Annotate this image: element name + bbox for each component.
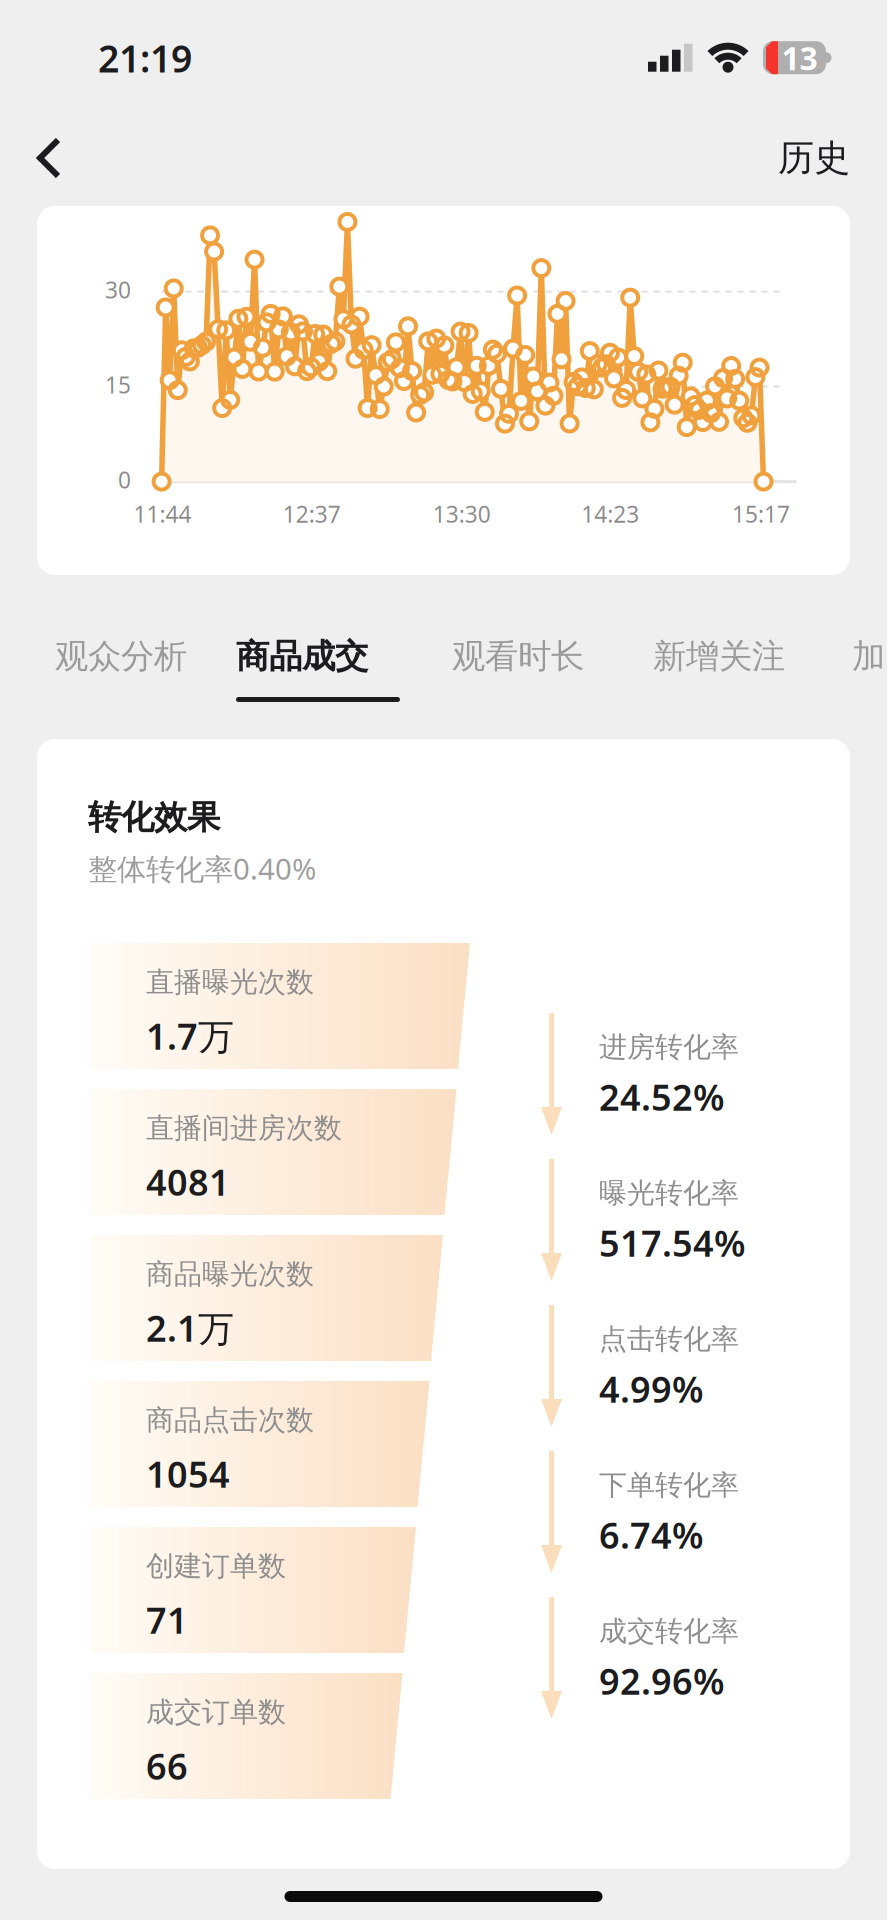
staticText: 观看时长 <box>452 636 584 677</box>
staticText: 13 <box>781 36 817 79</box>
staticText: 进房转化率 <box>599 1030 739 1064</box>
staticText: 商品曝光次数 <box>146 1257 314 1291</box>
staticText: 转化效果 <box>88 797 220 838</box>
staticText: 15:17 <box>732 499 790 529</box>
staticText: 下单转化率 <box>599 1468 739 1502</box>
staticText: 整体转化率0.40% <box>88 849 316 888</box>
staticText: 4081 <box>146 1158 230 1206</box>
staticText: 0 <box>118 465 131 495</box>
staticText: 30 <box>105 275 131 305</box>
button[interactable]: 观众分析 <box>30 575 210 739</box>
button[interactable]: 新增关注 <box>628 575 808 739</box>
staticText: 加 <box>852 636 885 677</box>
staticText: 历史 <box>778 136 850 180</box>
button[interactable]: 观看时长 <box>427 575 607 739</box>
staticText: 1.7万 <box>146 1012 234 1060</box>
staticText: 15 <box>105 370 131 400</box>
staticText: 11:44 <box>134 499 192 529</box>
staticText: 6.74% <box>599 1511 704 1559</box>
staticText: 517.54% <box>599 1219 746 1267</box>
staticText: 92.96% <box>599 1657 725 1705</box>
staticText: 创建订单数 <box>146 1549 286 1583</box>
staticText: 点击转化率 <box>599 1322 739 1356</box>
staticText: 2.1万 <box>146 1304 234 1352</box>
button[interactable]: Back <box>0 112 95 204</box>
staticText: 商品点击次数 <box>146 1403 314 1437</box>
staticText: 71 <box>146 1596 188 1644</box>
staticText: 24.52% <box>599 1073 725 1121</box>
staticText: 4.99% <box>599 1365 704 1413</box>
staticText: 13:30 <box>433 499 491 529</box>
staticText: 1054 <box>146 1450 230 1498</box>
staticText: 曝光转化率 <box>599 1176 739 1210</box>
staticText: 成交订单数 <box>146 1695 286 1729</box>
button[interactable]: 商品成交 <box>211 575 425 739</box>
staticText: 12:37 <box>283 499 341 529</box>
staticText: 新增关注 <box>653 636 785 677</box>
staticText: 直播间进房次数 <box>146 1111 342 1145</box>
staticText: 成交转化率 <box>599 1614 739 1648</box>
button[interactable]: 加 <box>827 575 887 739</box>
staticText: 直播曝光次数 <box>146 965 314 999</box>
button[interactable]: 历史 <box>778 110 887 206</box>
staticText: 66 <box>146 1742 188 1790</box>
staticText: 14:23 <box>581 499 639 529</box>
staticText: 21:19 <box>98 33 192 83</box>
staticText: 商品成交 <box>236 636 368 677</box>
staticText: 观众分析 <box>55 636 187 677</box>
